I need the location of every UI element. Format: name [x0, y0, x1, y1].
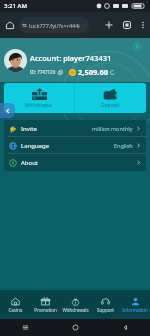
button[interactable]: Invite: [4, 120, 146, 137]
button[interactable]: Back: [100, 319, 150, 336]
staticText: Withdrawals: [62, 307, 89, 313]
button[interactable]: Deposit: [75, 83, 146, 113]
staticText: Account: player743431: [30, 53, 112, 63]
button[interactable]: New tab: [100, 12, 118, 38]
button[interactable]: Information: [120, 290, 150, 319]
button[interactable]: Home: [50, 319, 100, 336]
button[interactable]: About: [4, 154, 146, 171]
staticText: ID: 7747120: [30, 69, 56, 75]
button[interactable]: luck777.fyi/?s=r444i: [19, 17, 89, 33]
staticText: Support: [97, 307, 114, 313]
button[interactable]: Promotion: [30, 290, 60, 319]
button[interactable]: Casino: [0, 290, 30, 319]
button[interactable]: More options: [136, 12, 150, 38]
button[interactable]: Tabs: [118, 12, 136, 38]
button[interactable]: Language: [4, 137, 146, 154]
staticText: Language: [21, 142, 50, 150]
staticText: Casino: [8, 307, 23, 313]
staticText: Invite: [21, 125, 37, 133]
staticText: About: [21, 159, 39, 167]
button[interactable]: Withdrawal: [4, 83, 74, 113]
button[interactable]: Withdrawals: [60, 290, 90, 319]
button[interactable]: Support: [90, 290, 120, 319]
staticText: English: [114, 142, 133, 149]
staticText: 2,509.60: [78, 67, 108, 77]
staticText: 3:21 AM: [4, 2, 27, 10]
button[interactable]: Home: [0, 12, 19, 38]
staticText: Information: [122, 307, 148, 313]
button[interactable]: Recents: [0, 319, 50, 336]
button[interactable]: Back: [0, 103, 15, 118]
staticText: luck777.fyi/?s=r444i: [29, 22, 80, 29]
staticText: Promotion: [34, 307, 57, 313]
staticText: Withdrawal: [25, 102, 53, 109]
staticText: Deposit: [101, 102, 120, 109]
staticText: million monthly: [92, 125, 133, 132]
